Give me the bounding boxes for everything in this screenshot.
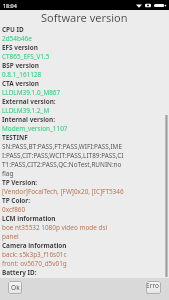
staticText: Internal version:	[2, 115, 56, 124]
staticText: LLDLM39.1.0_M867	[2, 88, 61, 97]
other: Wi-Fi	[136, 3, 142, 8]
staticText: 0.8.1_161128	[2, 70, 42, 79]
staticText: TP Version:	[2, 178, 38, 187]
staticText: BSP version	[2, 61, 39, 70]
staticText: [Vendor]FocalTech, [FW]0x20, [IC]FT5346	[2, 187, 124, 196]
staticText: 18:04	[3, 2, 17, 9]
button[interactable]: Ok	[8, 281, 22, 294]
staticText: LCM information	[2, 214, 56, 223]
staticText: Error	[146, 281, 161, 294]
staticText: boe nt35532 1080p video mode dsi panel	[2, 223, 124, 241]
other: Battery	[154, 3, 166, 8]
staticText: CT865_EFS_V1.5	[2, 52, 50, 61]
staticText: back: s5k3p3_f16s01c	[2, 250, 67, 259]
staticText: 0xcf860	[2, 205, 26, 214]
staticText: Software version	[41, 10, 128, 25]
staticText: LLDLM39.1.2_M	[2, 106, 50, 115]
staticText: External version:	[2, 97, 56, 106]
staticText: front: ov5670_d5v01g	[2, 259, 67, 268]
staticText: Modem_version_1107	[2, 124, 68, 133]
staticText: Camera information	[2, 241, 67, 250]
staticText: 2d54b46e	[2, 34, 32, 43]
staticText: CPU ID	[2, 25, 24, 34]
other: Camera	[145, 3, 151, 8]
staticText: CTA version	[2, 79, 40, 88]
staticText: EFS version	[2, 43, 38, 52]
button[interactable]: Error	[146, 281, 161, 294]
staticText: TP Color:	[2, 196, 30, 205]
staticText: TESTINF	[2, 133, 28, 142]
staticText: SN:PASS,BT:PASS,FT:PASS,WIFI:PASS,IMEI:P…	[2, 142, 124, 178]
staticText: Ok	[11, 283, 20, 292]
staticText: Battery ID:	[2, 268, 37, 277]
